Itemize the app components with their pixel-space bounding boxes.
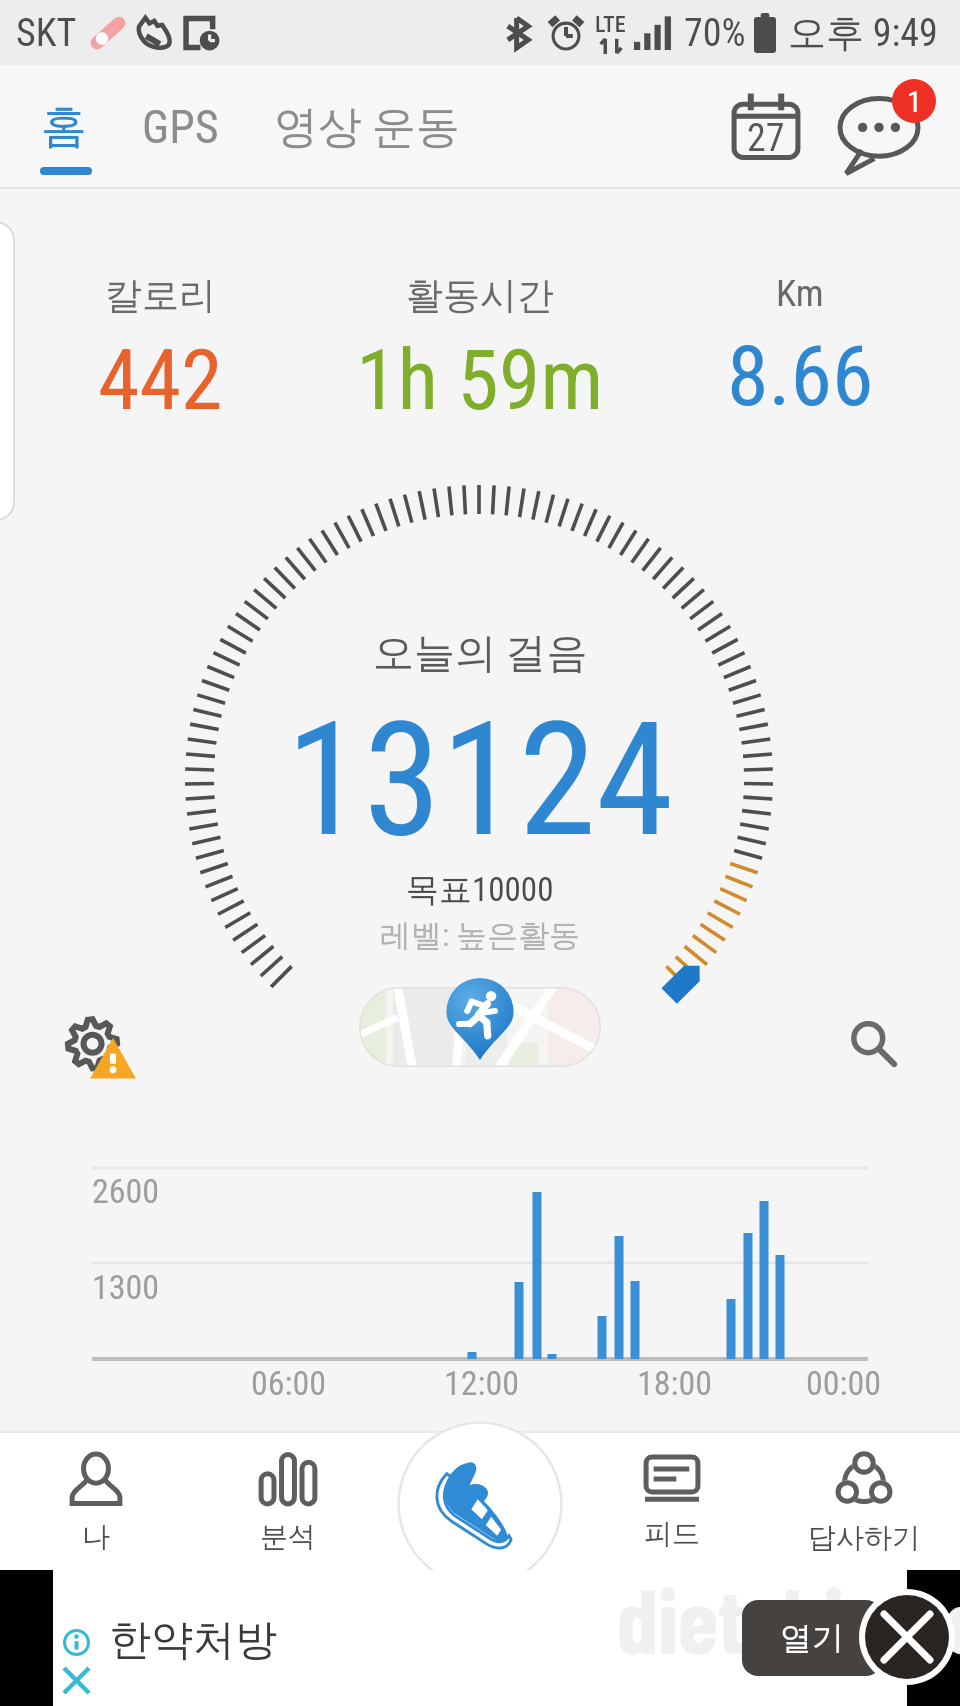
button[interactable]: Calendar: [718, 79, 814, 175]
button[interactable]: 칼로리: [0, 272, 320, 429]
staticText: 2600: [92, 1171, 160, 1211]
button[interactable]: Messages: [836, 75, 940, 179]
button[interactable]: GPS: [116, 65, 244, 189]
staticText: 활동시간: [406, 272, 554, 319]
staticText: dietshin.com: [617, 1562, 960, 1672]
staticText: 8.66: [727, 327, 874, 425]
staticText: 한약처방: [109, 1614, 277, 1667]
button[interactable]: [359, 987, 601, 1067]
staticText: 12:00: [444, 1363, 520, 1403]
button[interactable]: Step tracking: [397, 1421, 563, 1587]
staticText: 1h 59m: [356, 331, 604, 429]
button[interactable]: Km: [640, 272, 960, 425]
staticText: 열기: [780, 1618, 844, 1658]
staticText: 1: [907, 84, 922, 119]
button[interactable]: Settings: [52, 1000, 156, 1104]
staticText: SKT: [16, 11, 77, 56]
staticText: 칼로리: [105, 272, 216, 319]
staticText: 06:00: [251, 1363, 327, 1403]
staticText: 나: [82, 1519, 110, 1554]
staticText: GPS: [142, 100, 219, 154]
button[interactable]: 답사하기: [768, 1431, 960, 1570]
button[interactable]: 나: [0, 1431, 192, 1570]
button[interactable]: 활동시간: [320, 272, 640, 429]
staticText: 18:00: [637, 1363, 713, 1403]
staticText: 답사하기: [808, 1520, 920, 1555]
staticText: 피드: [644, 1516, 700, 1551]
button[interactable]: 영상 운동: [272, 65, 462, 189]
button[interactable]: 피드: [576, 1431, 768, 1570]
staticText: 분석: [260, 1519, 316, 1554]
staticText: 목표10000: [406, 869, 554, 911]
button[interactable]: 홈: [26, 65, 102, 189]
staticText: 00:00: [806, 1363, 882, 1403]
staticText: 70%: [684, 11, 746, 56]
staticText: 13124: [286, 688, 674, 872]
button[interactable]: 열기: [742, 1600, 882, 1676]
button[interactable]: Close ad: [865, 1595, 949, 1679]
staticText: LTE: [595, 12, 626, 38]
staticText: 홈: [41, 98, 87, 156]
staticText: 영상 운동: [274, 100, 461, 155]
staticText: 1300: [92, 1267, 160, 1307]
button[interactable]: Search: [822, 992, 926, 1096]
staticText: 레벨: 높은활동: [380, 916, 581, 955]
staticText: 27: [747, 116, 785, 161]
staticText: 오후 9:49: [788, 9, 938, 57]
staticText: Km: [776, 272, 824, 315]
staticText: 442: [98, 331, 223, 429]
button[interactable]: 분석: [192, 1431, 384, 1570]
staticText: 오늘의 걸음: [373, 628, 588, 680]
